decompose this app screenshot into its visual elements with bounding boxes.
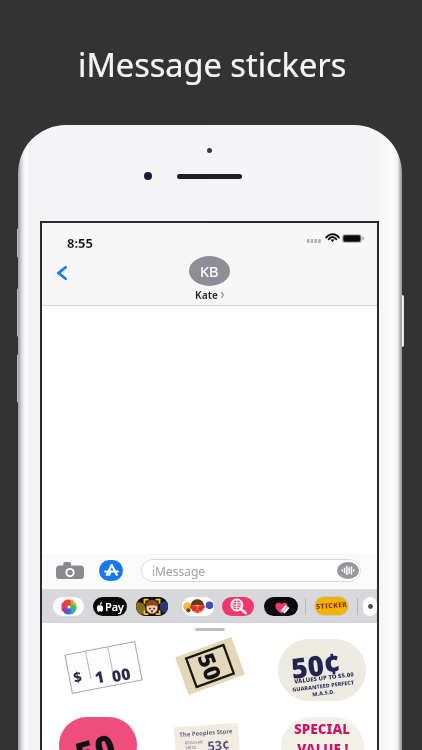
button[interactable]: Sticker	[63, 640, 143, 694]
button[interactable]: App	[53, 597, 84, 616]
button[interactable]: App	[136, 597, 168, 616]
staticText: 50	[70, 722, 121, 750]
button[interactable]: Audio message	[337, 562, 359, 579]
staticText: 50	[191, 648, 230, 684]
staticText: iMessage	[152, 563, 206, 579]
button[interactable]: App	[222, 597, 254, 616]
button[interactable]: Sticker	[277, 638, 367, 702]
staticText: $	[71, 666, 84, 687]
button[interactable]: Stickers	[315, 597, 348, 615]
staticText: 1	[93, 665, 107, 689]
staticText: SPECIAL	[294, 720, 351, 738]
button[interactable]: App	[93, 597, 127, 616]
staticText: VALUE !	[297, 740, 349, 750]
staticText: 00	[110, 662, 133, 687]
staticText: GUARANTEED PERFECT	[292, 678, 355, 693]
staticText: The Peoples Store	[179, 727, 234, 739]
staticText: 8:55	[67, 234, 93, 252]
staticText: VALUES UP TO $5.00	[294, 670, 354, 686]
staticText: PRICE	[185, 745, 197, 750]
button[interactable]: Sticker	[170, 635, 250, 697]
button[interactable]: Back	[47, 257, 77, 289]
button[interactable]: iMessage	[141, 559, 361, 582]
staticText: iMessage stickers	[78, 42, 347, 86]
button[interactable]: Sticker	[172, 722, 242, 750]
staticText: REGULAR	[185, 739, 203, 745]
staticText: M.A.S.D.	[312, 688, 335, 697]
staticText: STICKER	[316, 600, 348, 612]
button[interactable]: Sticker	[279, 716, 365, 750]
staticText: 53¢	[207, 735, 231, 750]
staticText: 50¢	[289, 643, 343, 687]
button[interactable]: Camera	[56, 562, 84, 579]
staticText: Pay	[105, 599, 124, 614]
button[interactable]: App	[363, 597, 377, 616]
button[interactable]: KB	[189, 256, 230, 302]
button[interactable]: Sticker	[57, 715, 139, 750]
button[interactable]: App	[182, 597, 214, 616]
staticText: KB	[200, 261, 219, 281]
button[interactable]: App Store	[99, 560, 123, 581]
staticText: Kate	[195, 288, 218, 302]
button[interactable]: App	[264, 597, 298, 616]
